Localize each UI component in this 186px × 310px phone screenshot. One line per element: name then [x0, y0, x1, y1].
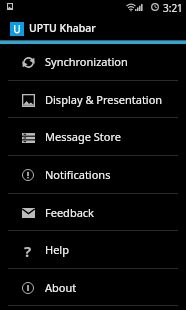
- staticText: ?: [24, 241, 32, 257]
- staticText: Message Store: [45, 129, 121, 144]
- staticText: Feedback: [45, 205, 94, 220]
- button[interactable]: Synchronization: [0, 43, 186, 80]
- staticText: About: [45, 280, 77, 295]
- button[interactable]: Feedback: [0, 194, 186, 231]
- button[interactable]: Display & Presentation: [0, 81, 186, 118]
- staticText: Display & Presentation: [45, 92, 163, 107]
- staticText: Help: [45, 242, 69, 257]
- button[interactable]: Notifications: [0, 156, 186, 193]
- staticText: 3:21: [163, 1, 183, 15]
- staticText: Notifications: [45, 167, 111, 182]
- button[interactable]: About: [0, 269, 186, 306]
- staticText: UPTU Khabar: [29, 21, 96, 35]
- button[interactable]: ?: [0, 231, 186, 268]
- button[interactable]: Message Store: [0, 118, 186, 155]
- staticText: Synchronization: [45, 54, 128, 69]
